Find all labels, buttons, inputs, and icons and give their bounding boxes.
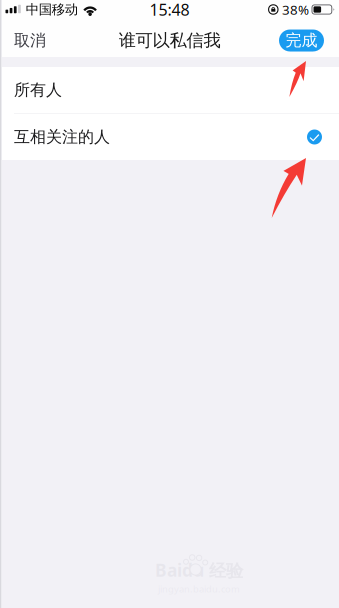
button[interactable]: 所有人 [0,67,339,113]
staticText: 取消 [14,31,46,50]
staticText: 15:48 [149,0,189,20]
staticText: 谁可以私信我 [118,30,220,51]
staticText: 中国移动 [26,1,78,18]
staticText: 完成 [285,31,317,50]
staticText: Baidu 经验 [155,558,243,582]
button[interactable]: 取消 [0,24,60,57]
staticText: 互相关注的人 [14,127,110,147]
staticText: 38% [282,1,309,18]
staticText: 所有人 [14,80,62,100]
button[interactable]: 完成 [279,29,324,51]
button[interactable]: 互相关注的人 [0,114,339,160]
